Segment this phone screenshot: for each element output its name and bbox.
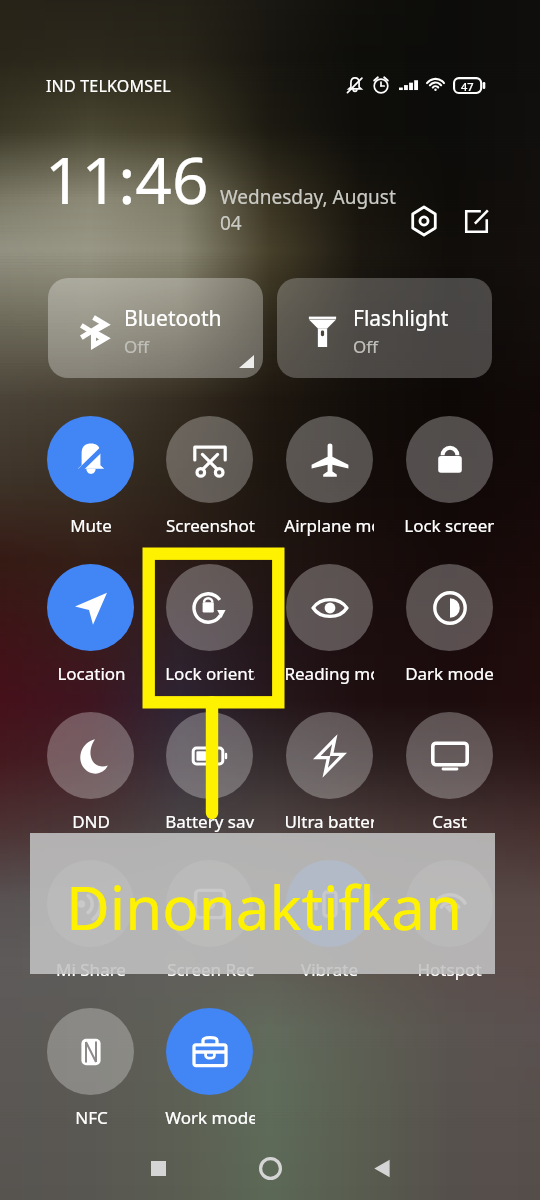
button[interactable]: Mute [31,416,150,536]
button[interactable]: Edit [454,199,498,243]
button[interactable]: Battery saver [150,712,269,832]
button[interactable]: Work mode [150,1008,269,1128]
staticText: Airplane mode [284,514,374,536]
staticText: Dark mode [405,662,494,684]
button[interactable]: Lock screen [389,416,509,536]
button[interactable]: Lock orientation [150,564,269,684]
button[interactable]: Settings [402,199,446,243]
button[interactable]: Bluetooth [48,278,263,378]
staticText: Screen Rec [167,958,254,980]
button[interactable]: Screenshot [150,416,269,536]
staticText: 11:46 [45,136,209,223]
staticText: Bluetooth [124,304,222,333]
staticText: Dinonaktifkan [66,866,462,948]
button[interactable]: Flashlight [277,278,492,378]
staticText: NFC [75,1106,108,1128]
button[interactable]: Cast [389,712,509,832]
staticText: IND TELKOMSEL [46,75,171,97]
button[interactable]: Recents [118,1136,198,1200]
button[interactable]: Airplane mode [269,416,389,536]
button[interactable]: NFC [31,1008,150,1128]
staticText: DND [72,810,110,832]
staticText: 47 [461,79,474,94]
staticText: Hotspot [417,958,482,980]
button[interactable]: Location [31,564,150,684]
staticText: Location [57,662,126,684]
staticText: Ultra battery [284,810,374,832]
button[interactable]: Hotspot [389,860,509,980]
staticText: Lock screen [404,514,494,536]
staticText: Mute [70,514,112,536]
button[interactable]: Dark mode [389,564,509,684]
staticText: Flashlight [353,304,449,333]
button[interactable]: Screen Rec [150,860,269,980]
button[interactable]: Ultra battery [269,712,389,832]
staticText: Off [353,335,378,358]
staticText: Vibrate [301,958,358,980]
staticText: Wednesday, August 04 [220,184,410,235]
button[interactable]: Back [342,1136,422,1200]
staticText: Screenshot [166,514,255,536]
staticText: Reading mode [284,662,374,684]
staticText: Off [124,335,149,358]
button[interactable]: Home [230,1136,310,1200]
staticText: Cast [432,810,467,832]
button[interactable]: Reading mode [269,564,389,684]
staticText: Battery saver [165,810,255,832]
button[interactable]: Vibrate [269,860,389,980]
staticText: Work mode [165,1106,255,1128]
staticText: Lock orientation [165,662,255,684]
button[interactable]: Mi Share [31,860,150,980]
staticText: Mi Share [56,958,126,980]
button[interactable]: DND [31,712,150,832]
